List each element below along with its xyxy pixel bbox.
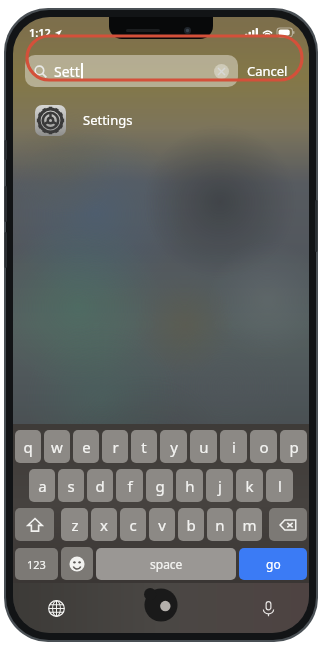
- button[interactable]: f: [116, 469, 143, 502]
- staticText: v: [158, 515, 166, 535]
- staticText: j: [218, 476, 222, 496]
- staticText: u: [199, 437, 209, 457]
- staticText: go: [266, 556, 281, 572]
- staticText: Sett: [54, 62, 80, 81]
- button[interactable]: h: [176, 469, 203, 502]
- button[interactable]: u: [190, 430, 217, 463]
- button[interactable]: r: [102, 430, 128, 463]
- staticText: r: [112, 437, 119, 457]
- staticText: c: [129, 515, 137, 535]
- button[interactable]: z: [61, 508, 88, 541]
- button[interactable]: o: [250, 430, 277, 463]
- button[interactable]: 123: [15, 548, 58, 580]
- button[interactable]: j: [206, 469, 233, 502]
- staticText: 123: [27, 557, 46, 572]
- button[interactable]: a: [29, 469, 55, 502]
- staticText: y: [170, 437, 178, 457]
- staticText: a: [38, 476, 47, 496]
- staticText: q: [23, 437, 33, 457]
- button[interactable]: t: [131, 430, 157, 463]
- staticText: x: [100, 515, 108, 535]
- button[interactable]: i: [220, 430, 247, 463]
- button[interactable]: Settings: [13, 99, 309, 141]
- staticText: space: [150, 556, 183, 572]
- button[interactable]: l: [266, 469, 293, 502]
- button[interactable]: space: [96, 548, 236, 580]
- button[interactable]: m: [236, 508, 262, 541]
- staticText: h: [185, 476, 195, 496]
- button[interactable]: b: [178, 508, 204, 541]
- button[interactable]: Backspace: [269, 508, 307, 541]
- button[interactable]: g: [146, 469, 173, 502]
- staticText: t: [141, 437, 147, 457]
- staticText: k: [245, 476, 254, 496]
- button[interactable]: q: [15, 430, 41, 463]
- button[interactable]: go: [239, 548, 307, 580]
- staticText: s: [67, 476, 75, 496]
- button[interactable]: e: [73, 430, 99, 463]
- button[interactable]: d: [87, 469, 113, 502]
- button[interactable]: n: [207, 508, 233, 541]
- button[interactable]: v: [149, 508, 175, 541]
- button[interactable]: Change keyboard language: [43, 595, 69, 621]
- button[interactable]: Shift: [15, 508, 54, 541]
- button[interactable]: Dictate: [255, 595, 281, 621]
- staticText: w: [51, 437, 63, 457]
- button[interactable]: Sett: [25, 55, 238, 87]
- staticText: o: [259, 437, 269, 457]
- staticText: b: [186, 515, 196, 535]
- staticText: 1:12: [29, 25, 51, 40]
- button[interactable]: x: [91, 508, 117, 541]
- staticText: n: [215, 515, 225, 535]
- button[interactable]: s: [58, 469, 84, 502]
- staticText: l: [278, 476, 282, 496]
- staticText: m: [242, 515, 257, 535]
- button[interactable]: k: [236, 469, 263, 502]
- staticText: f: [127, 476, 133, 496]
- button[interactable]: y: [160, 430, 187, 463]
- staticText: Settings: [83, 111, 133, 129]
- staticText: p: [289, 437, 299, 457]
- staticText: g: [155, 476, 165, 496]
- button[interactable]: Emoji: [61, 547, 93, 580]
- staticText: d: [95, 476, 105, 496]
- staticText: Cancel: [247, 62, 288, 80]
- button[interactable]: p: [280, 430, 307, 463]
- button[interactable]: c: [120, 508, 146, 541]
- staticText: z: [71, 515, 79, 535]
- button[interactable]: w: [44, 430, 70, 463]
- button[interactable]: Clear text: [214, 64, 229, 79]
- staticText: i: [232, 437, 236, 457]
- staticText: e: [82, 437, 91, 457]
- button[interactable]: Cancel: [238, 56, 297, 86]
